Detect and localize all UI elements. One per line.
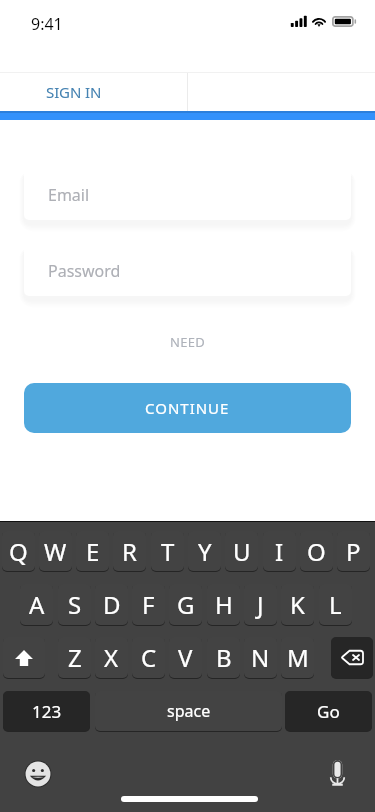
button[interactable]: Shift <box>3 637 45 678</box>
button[interactable]: I <box>263 531 296 571</box>
button[interactable]: P <box>337 531 370 571</box>
staticText: N <box>251 641 270 674</box>
button[interactable]: Go <box>285 691 372 731</box>
staticText: Y <box>198 535 212 568</box>
button[interactable]: H <box>207 584 240 625</box>
button[interactable]: D <box>95 584 128 625</box>
button[interactable]: Password <box>24 245 351 296</box>
button[interactable]: K <box>281 584 314 625</box>
button[interactable]: S <box>58 584 91 625</box>
button[interactable]: Emoji keyboard <box>21 757 55 791</box>
button[interactable]: R <box>113 531 146 571</box>
staticText: A <box>29 588 45 621</box>
staticText: 9:41 <box>31 13 63 35</box>
button[interactable]: W <box>39 531 72 571</box>
staticText: K <box>290 588 305 621</box>
staticText: R <box>122 535 137 568</box>
staticText: G <box>177 588 195 621</box>
staticText: C <box>141 641 157 674</box>
button[interactable]: U <box>225 531 258 571</box>
staticText: space <box>167 700 211 722</box>
staticText: V <box>178 641 193 674</box>
button[interactable]: 123 <box>3 691 90 731</box>
button[interactable]: M <box>281 637 314 678</box>
staticText: Z <box>68 641 82 674</box>
staticText: P <box>346 535 361 568</box>
button[interactable]: A <box>20 584 53 625</box>
staticText: J <box>257 588 264 621</box>
staticText: T <box>161 535 175 568</box>
staticText: Q <box>9 535 28 568</box>
button[interactable]: V <box>169 637 202 678</box>
button[interactable]: space <box>95 691 282 731</box>
button[interactable]: Q <box>2 531 35 571</box>
button[interactable]: Y <box>188 531 221 571</box>
staticText: CONTINUE <box>145 398 230 418</box>
button[interactable]: L <box>319 584 352 625</box>
button[interactable]: J <box>244 584 277 625</box>
staticText: X <box>104 641 119 674</box>
button[interactable]: SIGN IN <box>0 73 148 111</box>
button[interactable]: E <box>76 531 109 571</box>
button[interactable]: CONTINUE <box>24 383 351 433</box>
staticText: F <box>142 588 155 621</box>
staticText: NEED <box>0 333 375 351</box>
staticText: L <box>329 588 342 621</box>
button[interactable]: Z <box>58 637 91 678</box>
staticText: M <box>287 641 309 674</box>
staticText: 123 <box>32 700 62 723</box>
staticText: I <box>275 535 284 568</box>
staticText: W <box>44 535 67 568</box>
button[interactable]: N <box>244 637 277 678</box>
staticText: SIGN IN <box>46 82 102 102</box>
staticText: B <box>216 641 232 674</box>
button[interactable]: Email <box>24 169 351 220</box>
button[interactable]: C <box>132 637 165 678</box>
staticText: S <box>68 588 82 621</box>
button[interactable]: G <box>169 584 202 625</box>
button[interactable]: Backspace <box>331 637 373 678</box>
button[interactable]: B <box>207 637 240 678</box>
staticText: Password <box>48 260 121 282</box>
staticText: Email <box>48 184 90 206</box>
staticText: O <box>307 535 326 568</box>
button[interactable]: O <box>300 531 333 571</box>
staticText: D <box>103 588 121 621</box>
button[interactable]: T <box>151 531 184 571</box>
button[interactable]: X <box>95 637 128 678</box>
button[interactable]: F <box>132 584 165 625</box>
staticText: U <box>233 535 251 568</box>
staticText: E <box>86 535 100 568</box>
button[interactable]: Voice input <box>320 756 354 790</box>
staticText: H <box>215 588 233 621</box>
staticText: Go <box>317 700 340 723</box>
